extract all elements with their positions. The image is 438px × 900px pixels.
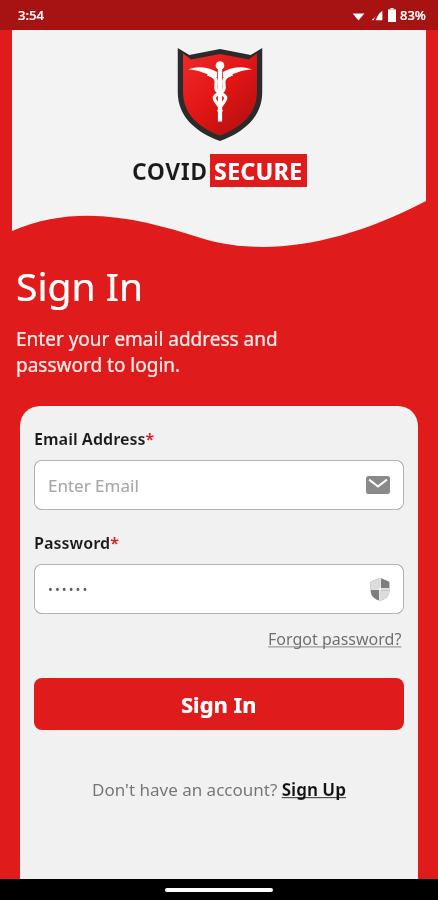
staticText: Don't have an account? Sign Up xyxy=(92,778,346,801)
staticText: •••••• xyxy=(48,580,370,598)
staticText: Password* xyxy=(34,532,119,554)
staticText: SECURE xyxy=(214,155,303,186)
button[interactable]: Email address input xyxy=(34,460,404,510)
staticText: 83% xyxy=(400,6,426,24)
staticText: Enter your email address and password to… xyxy=(16,326,278,378)
staticText: Email Address* xyxy=(34,428,155,450)
staticText: COVID xyxy=(132,155,208,186)
staticText: Forgot password? xyxy=(268,628,402,650)
button[interactable]: Don't have an account? Sign Up xyxy=(34,778,404,801)
button[interactable]: Forgot password? xyxy=(266,626,404,652)
staticText: 3:54 xyxy=(18,6,44,24)
button[interactable]: Password input xyxy=(34,564,404,614)
staticText: Enter Email xyxy=(48,474,366,497)
button[interactable]: Sign In xyxy=(34,678,404,730)
staticText: Sign In xyxy=(181,689,257,719)
staticText: Sign In xyxy=(16,259,144,312)
